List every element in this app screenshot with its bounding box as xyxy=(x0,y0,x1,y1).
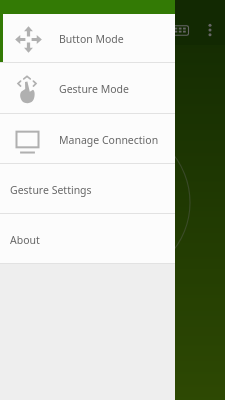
staticText: Manage Connection xyxy=(59,133,159,147)
button[interactable]: Keyboard xyxy=(165,15,195,45)
button[interactable]: Button Mode xyxy=(0,14,175,62)
staticText: About xyxy=(10,233,40,247)
button[interactable]: Manage Connection xyxy=(0,114,175,163)
staticText: Gesture Mode xyxy=(59,82,129,96)
staticText: Button Mode xyxy=(59,32,124,46)
button[interactable]: Gesture Mode xyxy=(0,63,175,113)
button[interactable]: Gesture Settings xyxy=(0,164,175,213)
staticText: Gesture Settings xyxy=(10,183,92,197)
button[interactable]: More options xyxy=(195,15,225,45)
button[interactable]: About xyxy=(0,214,175,263)
